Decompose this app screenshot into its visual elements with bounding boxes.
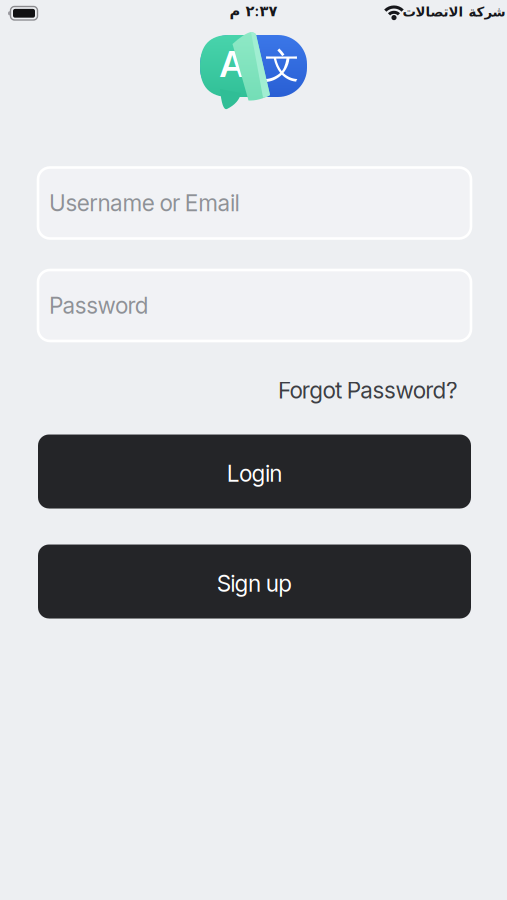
staticText: Sign up [217,570,292,597]
button[interactable]: Login [38,434,471,508]
staticText: Username or Email [49,190,239,216]
staticText: شركة الاتصالات [402,4,505,19]
staticText: ٢:٣٧ م [229,2,277,20]
staticText: 文 [265,45,300,87]
button[interactable]: Sign up [38,544,471,618]
staticText: A [219,43,244,85]
button[interactable]: Username or Email [38,167,471,238]
staticText: Login [227,460,282,487]
staticText: Password [49,292,149,319]
staticText: Forgot Password? [278,377,458,404]
button[interactable]: Forgot Password? [278,377,458,404]
button[interactable]: Password [38,270,471,341]
